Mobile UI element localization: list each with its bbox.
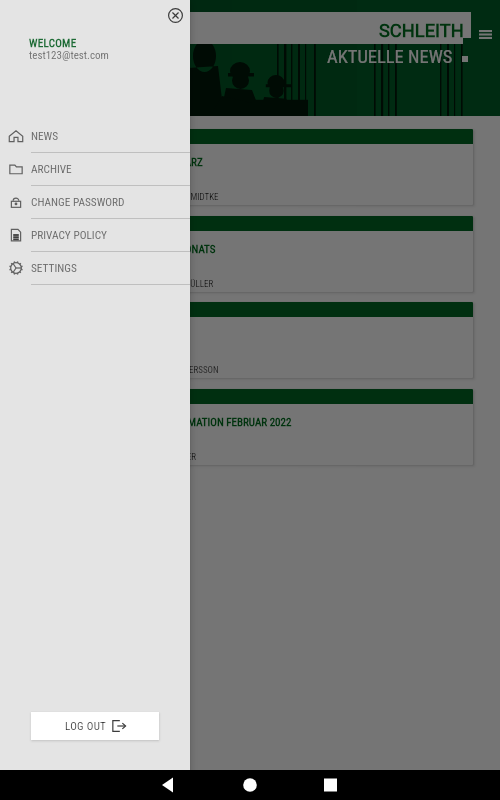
staticText: CHANGE PASSWORD [31, 196, 125, 209]
button[interactable]: UNSERE MITARBEITERIN DES MONATS [27, 216, 473, 292]
button[interactable]: CHANGE PASSWORD [0, 186, 190, 219]
button[interactable]: Recent apps [305, 770, 355, 800]
staticText: SETTINGS [31, 262, 77, 275]
staticText: STEFAN MEIER [143, 452, 197, 463]
button[interactable]: MITARBEITER DES MONATS MÄRZ [27, 129, 473, 205]
staticText: UNSERE MITARBEITERIN DES MONATS [47, 243, 216, 256]
staticText: ARCHIVE [31, 163, 72, 176]
button[interactable]: PRIVACY POLICY [0, 219, 190, 252]
staticText: WICHTIGE MITARBEITERINFORMATION FEBRUAR … [54, 416, 292, 429]
staticText: AKTUELLE NEWS [327, 46, 453, 68]
button[interactable]: WICHTIGE MITARBEITERINFORMATION FEBRUAR … [27, 389, 473, 465]
staticText: PRIVACY POLICY [31, 229, 107, 242]
button[interactable]: Open navigation menu [473, 22, 497, 46]
staticText: LARS ANDERSSON [152, 365, 219, 376]
button[interactable]: SETTINGS [0, 252, 190, 285]
button[interactable]: NEUE MITARBEITER [27, 302, 473, 378]
staticText: SCHLEITH [379, 20, 464, 41]
staticText: PETER MÜLLER [158, 279, 214, 290]
staticText: LOG OUT [65, 720, 107, 733]
staticText: test123@test.com [29, 49, 109, 62]
button[interactable]: ARCHIVE [0, 153, 190, 186]
button[interactable]: NEWS [0, 120, 190, 153]
staticText: WELCOME [29, 37, 77, 50]
staticText: MITARBEITER DES MONATS MÄRZ [53, 156, 203, 169]
button[interactable]: Back [150, 770, 200, 800]
button[interactable]: Close navigation menu [163, 3, 187, 27]
button[interactable]: LOG OUT [31, 712, 159, 740]
button[interactable]: Home [225, 770, 275, 800]
staticText: ANDREAS SCHMIDTKE [138, 192, 219, 203]
staticText: NEWS [31, 130, 59, 143]
